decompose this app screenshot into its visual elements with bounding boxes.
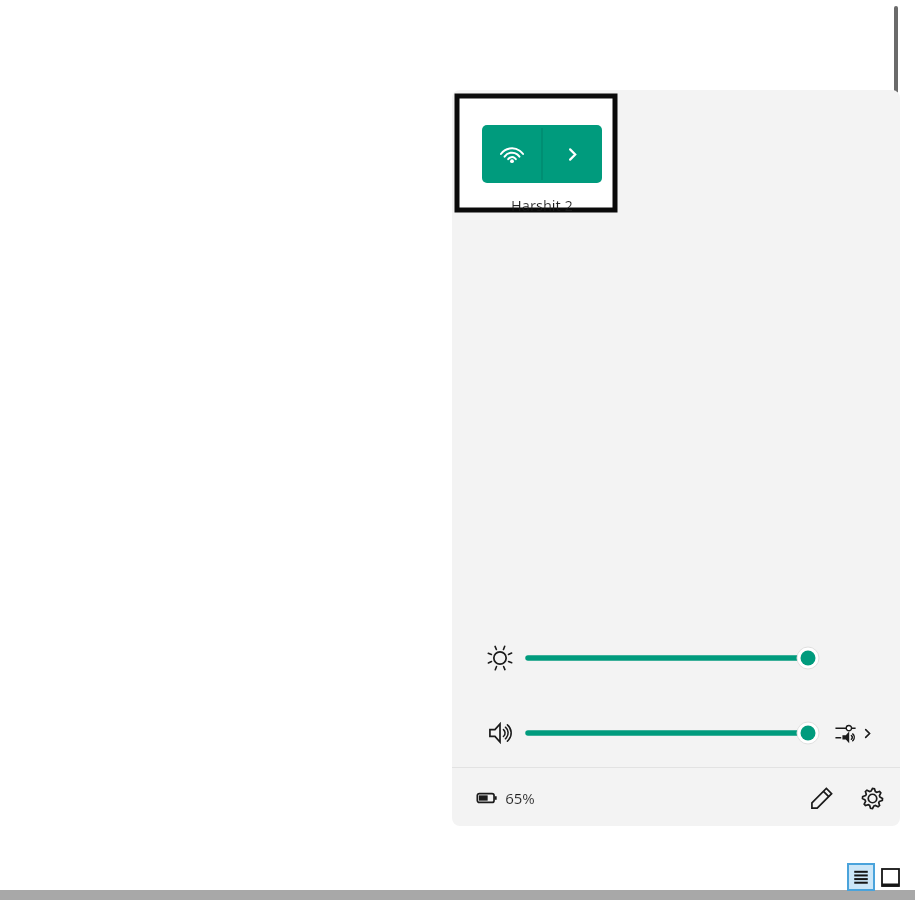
button[interactable]: [522, 645, 822, 671]
button[interactable]: Audio settings: [834, 719, 874, 747]
button[interactable]: Settings: [850, 776, 894, 820]
button[interactable]: Wi-Fi: [482, 125, 542, 183]
button[interactable]: Window view: [877, 864, 903, 890]
button[interactable]: Battery 65 percent: [476, 782, 535, 814]
staticText: 65%: [505, 788, 535, 808]
button[interactable]: List view: [848, 864, 874, 890]
button[interactable]: Edit: [800, 776, 844, 820]
staticText: Harshit 2: [511, 195, 573, 215]
button[interactable]: Wi-Fi settings: [542, 125, 602, 183]
button[interactable]: [522, 720, 822, 746]
